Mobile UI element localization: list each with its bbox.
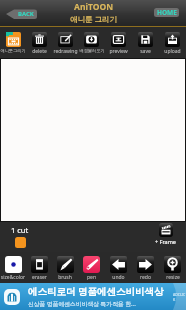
staticText: redrawing <box>53 48 78 55</box>
staticText: 배경불러오기 <box>79 48 105 53</box>
button[interactable]: 에스티로더 명품에센스비비색상 <box>0 283 186 310</box>
staticText: eraser <box>32 274 47 281</box>
staticText: 에스티로더 명품에센스비비색상 <box>28 285 164 298</box>
button[interactable]: Preview <box>105 27 132 58</box>
staticText: BACK <box>18 10 34 18</box>
staticText: undo <box>112 274 125 281</box>
staticText: brush <box>58 274 72 281</box>
button[interactable]: HOME <box>154 8 179 17</box>
staticText: HOME <box>157 8 177 17</box>
staticText: + Frame <box>155 238 176 245</box>
staticText: size&colors <box>0 274 26 281</box>
button[interactable]: Pen <box>78 252 105 283</box>
staticText: pen <box>87 274 96 281</box>
staticText: 애니툰 그리기 <box>70 14 117 24</box>
button[interactable]: Brush <box>52 252 78 283</box>
button[interactable]: Size and colors <box>0 252 26 283</box>
button[interactable]: Anitoon draw <box>0 27 26 58</box>
staticText: save <box>140 48 151 55</box>
button[interactable]: Resize <box>159 252 186 283</box>
staticText: resize <box>166 274 180 281</box>
staticText: upload <box>164 48 181 55</box>
button[interactable]: BACK <box>6 9 37 19</box>
staticText: redo <box>140 274 151 281</box>
button[interactable]: Eraser <box>26 252 52 283</box>
staticText: ADCLICK <box>173 292 186 302</box>
staticText: 1 cut <box>11 225 29 235</box>
button[interactable]: Load background <box>78 27 105 58</box>
staticText: delete <box>32 48 47 55</box>
button[interactable]: + Frame <box>155 223 176 245</box>
button[interactable]: 1 cut <box>11 225 29 248</box>
button[interactable]: Redo <box>132 252 159 283</box>
staticText: 신상품 명품에센스비비색상 특가적용 한... <box>28 300 136 308</box>
staticText: 애니툰그리기 <box>0 48 26 53</box>
button[interactable]: Redraw <box>52 27 78 58</box>
button[interactable]: Undo <box>105 252 132 283</box>
staticText: preview <box>109 48 128 55</box>
staticText: AniTOON <box>74 1 114 13</box>
button[interactable]: Delete <box>26 27 52 58</box>
button[interactable]: Save <box>132 27 159 58</box>
button[interactable]: Upload <box>159 27 186 58</box>
